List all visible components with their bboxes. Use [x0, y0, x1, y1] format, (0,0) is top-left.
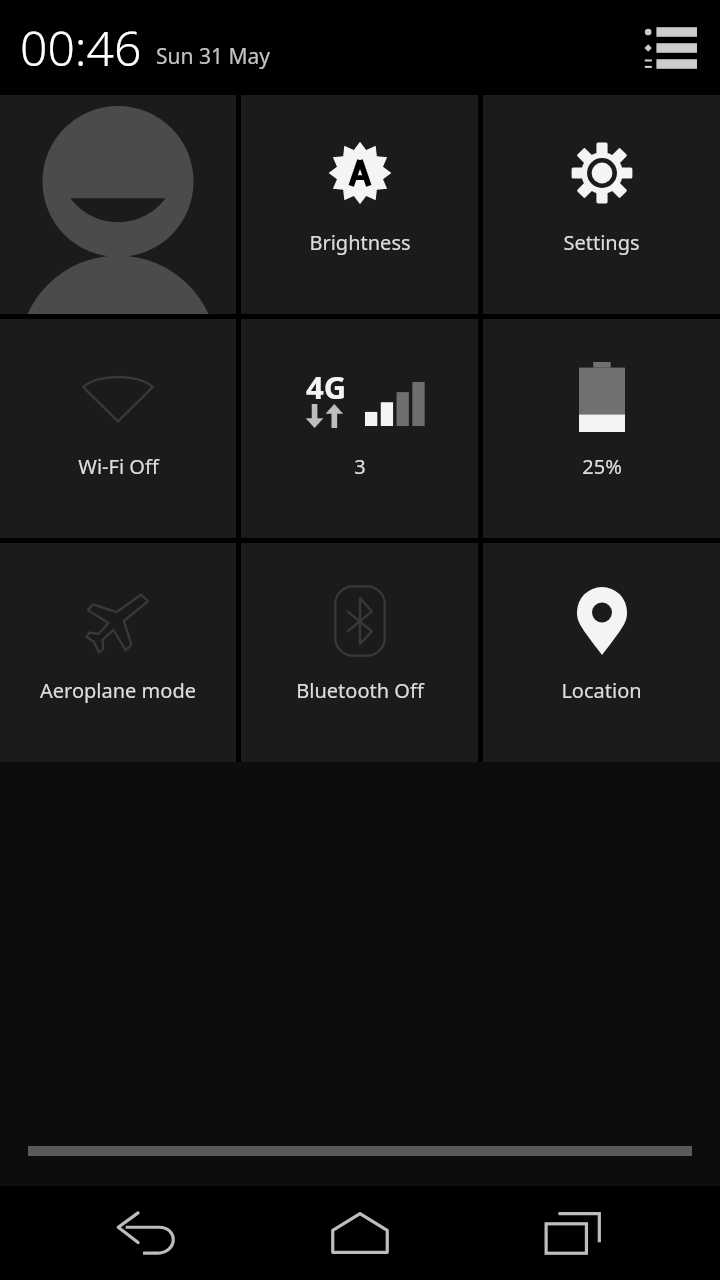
- button[interactable]: Wi-Fi Off: [0, 319, 236, 538]
- button[interactable]: Home: [295, 1186, 425, 1280]
- staticText: Sun 31 May: [156, 42, 270, 71]
- staticText: 25%: [582, 453, 622, 480]
- staticText: Bluetooth Off: [296, 677, 424, 704]
- staticText: Wi-Fi Off: [78, 453, 159, 480]
- staticText: Location: [561, 677, 642, 704]
- button[interactable]: Brightness: [241, 95, 478, 314]
- button[interactable]: Notifications: [630, 15, 706, 81]
- button[interactable]: Settings: [483, 95, 720, 314]
- button[interactable]: User profile: [0, 95, 236, 314]
- button[interactable]: Recent apps: [508, 1186, 638, 1280]
- staticText: 00:46: [20, 15, 142, 80]
- staticText: Settings: [563, 229, 640, 256]
- button[interactable]: Aeroplane mode: [0, 543, 236, 762]
- button[interactable]: 25%: [483, 319, 720, 538]
- staticText: Brightness: [309, 229, 411, 256]
- button[interactable]: Back: [83, 1186, 213, 1280]
- button[interactable]: 4G: [241, 319, 478, 538]
- button[interactable]: Location: [483, 543, 720, 762]
- button[interactable]: Bluetooth Off: [241, 543, 478, 762]
- staticText: 3: [354, 453, 366, 480]
- staticText: Aeroplane mode: [40, 677, 196, 704]
- staticText: 4G: [306, 366, 347, 408]
